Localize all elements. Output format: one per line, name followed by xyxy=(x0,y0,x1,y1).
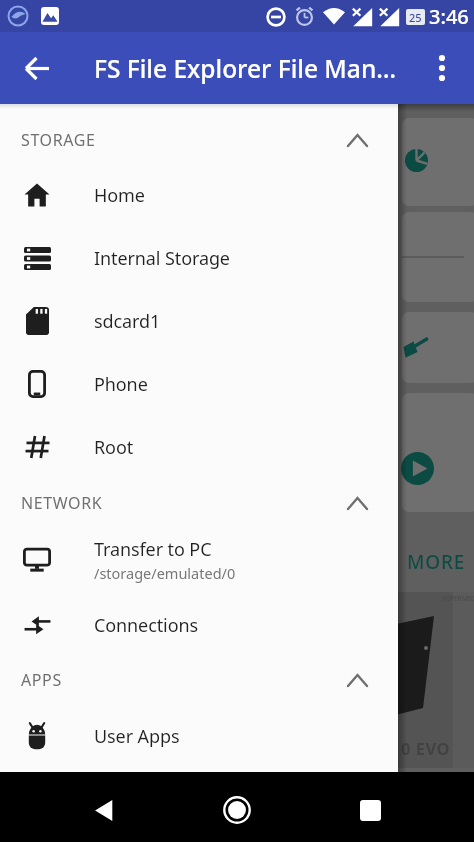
staticText: User Apps xyxy=(94,724,180,749)
button[interactable] xyxy=(217,790,257,830)
staticText: 25 xyxy=(409,10,422,25)
button[interactable]: sdcard1 xyxy=(0,293,398,349)
staticText: MORE xyxy=(407,549,466,575)
button[interactable] xyxy=(83,790,123,830)
button[interactable]: Root xyxy=(0,419,398,475)
button[interactable] xyxy=(16,47,58,89)
button[interactable]: Internal Storage xyxy=(0,230,398,286)
button[interactable]: STORAGE xyxy=(0,116,398,164)
button[interactable] xyxy=(350,790,390,830)
button[interactable]: APPS xyxy=(0,656,398,704)
staticText: Root xyxy=(94,435,134,460)
button[interactable]: Transfer to PC xyxy=(0,528,398,592)
staticText: FS File Explorer File Man… xyxy=(94,52,397,85)
staticText: Phone xyxy=(94,372,148,397)
staticText: Internal Storage xyxy=(94,246,230,271)
staticText: Transfer to PC xyxy=(94,537,212,562)
staticText: 3:46 xyxy=(429,3,469,30)
staticText: Connections xyxy=(94,613,198,638)
staticText: SUPERMID xyxy=(442,594,474,603)
button[interactable]: NETWORK xyxy=(0,479,398,527)
staticText: sdcard1 xyxy=(94,309,161,334)
staticText: 0 EVO xyxy=(401,737,451,759)
button[interactable]: User Apps xyxy=(0,708,398,764)
staticText: STORAGE xyxy=(21,129,96,151)
button[interactable] xyxy=(421,47,463,89)
staticText: APPS xyxy=(21,669,62,691)
button[interactable]: Phone xyxy=(0,356,398,412)
button[interactable]: Home xyxy=(0,167,398,223)
staticText: NETWORK xyxy=(21,492,103,514)
staticText: Home xyxy=(94,183,145,208)
button[interactable]: Connections xyxy=(0,597,398,653)
staticText: /storage/emulated/0 xyxy=(94,563,236,583)
